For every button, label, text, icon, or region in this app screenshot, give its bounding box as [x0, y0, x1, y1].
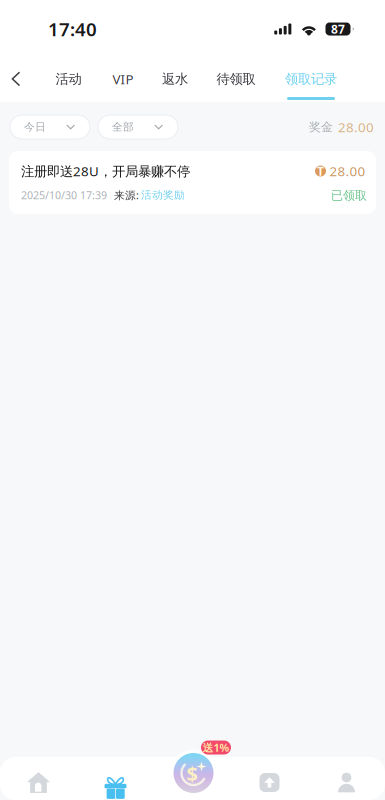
button[interactable]: Deposit: [239, 764, 299, 800]
staticText: 领取记录: [285, 71, 337, 87]
staticText: 28.00: [338, 118, 374, 136]
button[interactable]: 返水: [155, 71, 195, 100]
staticText: 奖金: [309, 120, 333, 134]
staticText: VIP: [112, 70, 133, 88]
staticText: 17:40: [48, 17, 97, 41]
button[interactable]: 活动: [48, 71, 88, 100]
staticText: 来源:: [114, 188, 139, 202]
staticText: 活动: [55, 71, 81, 87]
staticText: T: [317, 163, 324, 179]
button[interactable]: 领取记录: [279, 71, 343, 100]
staticText: 返水: [162, 71, 188, 87]
staticText: 全部: [112, 120, 134, 133]
staticText: 待领取: [216, 71, 255, 87]
staticText: 28.00: [329, 162, 365, 180]
button[interactable]: Profile: [316, 764, 376, 800]
button[interactable]: Home: [8, 764, 68, 800]
staticText: 注册即送28U，开局暴赚不停: [21, 162, 190, 180]
button[interactable]: Deposit bonus: [170, 740, 232, 798]
button[interactable]: 全部: [98, 115, 178, 139]
staticText: 活动奖励: [141, 188, 185, 201]
staticText: $: [186, 760, 197, 787]
button[interactable]: 待领取: [210, 71, 262, 100]
staticText: 2025/10/30 17:39: [21, 188, 107, 202]
staticText: 送1%: [202, 740, 229, 755]
staticText: 已领取: [331, 188, 367, 203]
button[interactable]: VIP: [103, 71, 143, 100]
button[interactable]: Back: [0, 64, 32, 93]
button[interactable]: Promotions: [85, 764, 145, 800]
staticText: 87: [331, 21, 345, 37]
staticText: 今日: [24, 120, 46, 133]
button[interactable]: 今日: [10, 115, 90, 139]
